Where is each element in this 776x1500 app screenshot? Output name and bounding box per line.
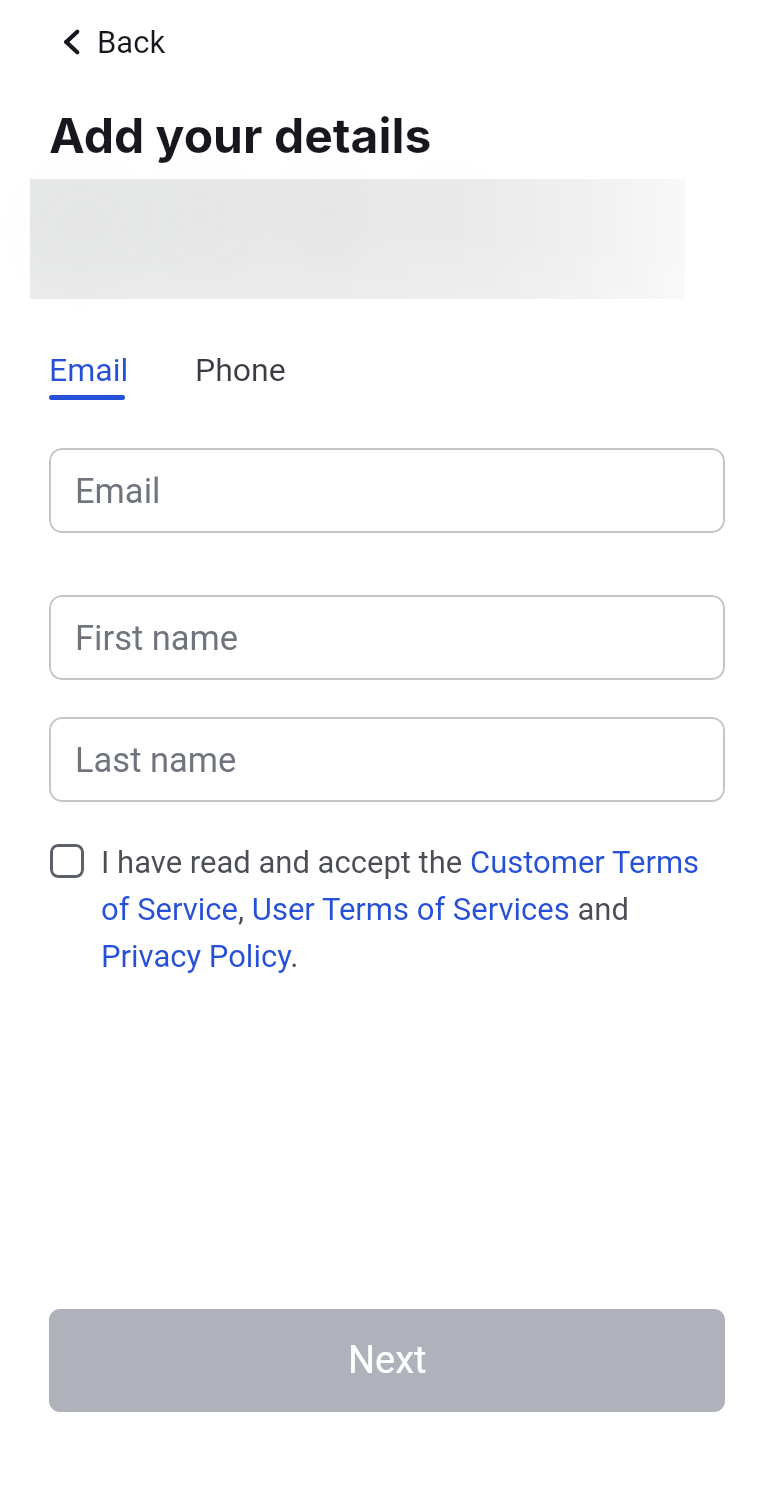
staticText: Back — [97, 24, 166, 60]
button[interactable]: First name — [49, 595, 725, 680]
button[interactable]: Email — [49, 351, 129, 400]
staticText: Email — [75, 471, 161, 511]
staticText: Phone — [195, 351, 286, 389]
staticText: First name — [75, 618, 239, 658]
button[interactable]: Accept terms and conditions — [50, 844, 84, 878]
staticText: Email — [49, 351, 129, 389]
button[interactable]: Next — [49, 1309, 725, 1412]
button[interactable]: Last name — [49, 717, 725, 802]
staticText: Next — [348, 1338, 427, 1383]
button[interactable]: I have read and accept the Customer Term… — [101, 844, 701, 975]
button[interactable]: Back — [60, 24, 166, 60]
staticText: Last name — [75, 740, 237, 780]
button[interactable]: Phone — [195, 351, 286, 389]
button[interactable]: Email — [49, 448, 725, 533]
staticText: Add your details — [49, 106, 432, 164]
